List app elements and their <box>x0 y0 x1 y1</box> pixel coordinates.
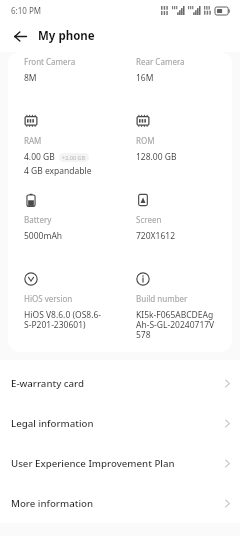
staticText: 16M <box>136 72 154 84</box>
staticText: 720X1612 <box>136 230 176 242</box>
staticText: HiOS version <box>24 293 73 304</box>
staticText: 4 GB expandable <box>24 165 92 177</box>
button[interactable]: Back <box>8 24 32 48</box>
staticText: User Experience Improvement Plan <box>11 457 175 470</box>
staticText: HiOS V8.6.0 (OS8.6- S-P201-230601) <box>24 309 102 330</box>
staticText: 5000mAh <box>24 230 63 242</box>
staticText: RAM <box>24 135 42 146</box>
staticText: Front Camera <box>24 56 76 67</box>
button[interactable]: More information <box>0 483 240 523</box>
staticText: 4.00 GB <box>24 151 55 163</box>
staticText: KI5k-F065ABCDEAg Ah-S-GL-20240717V 578 <box>136 309 215 340</box>
staticText: Rear Camera <box>136 56 185 67</box>
button[interactable]: Legal information <box>0 403 240 443</box>
staticText: More information <box>11 497 93 510</box>
staticText: +2.00 GB <box>62 154 86 161</box>
staticText: ROM <box>136 135 155 146</box>
staticText: Screen <box>136 214 162 225</box>
staticText: 6:10 PM <box>11 5 42 16</box>
staticText: Build number <box>136 293 188 304</box>
button[interactable]: E-warranty card <box>0 363 240 403</box>
button[interactable]: User Experience Improvement Plan <box>0 443 240 483</box>
staticText: Legal information <box>11 417 94 430</box>
staticText: 8M <box>24 72 37 84</box>
staticText: 128.00 GB <box>136 151 177 163</box>
staticText: My phone <box>38 28 95 44</box>
staticText: E-warranty card <box>11 377 85 390</box>
staticText: Battery <box>24 214 52 225</box>
